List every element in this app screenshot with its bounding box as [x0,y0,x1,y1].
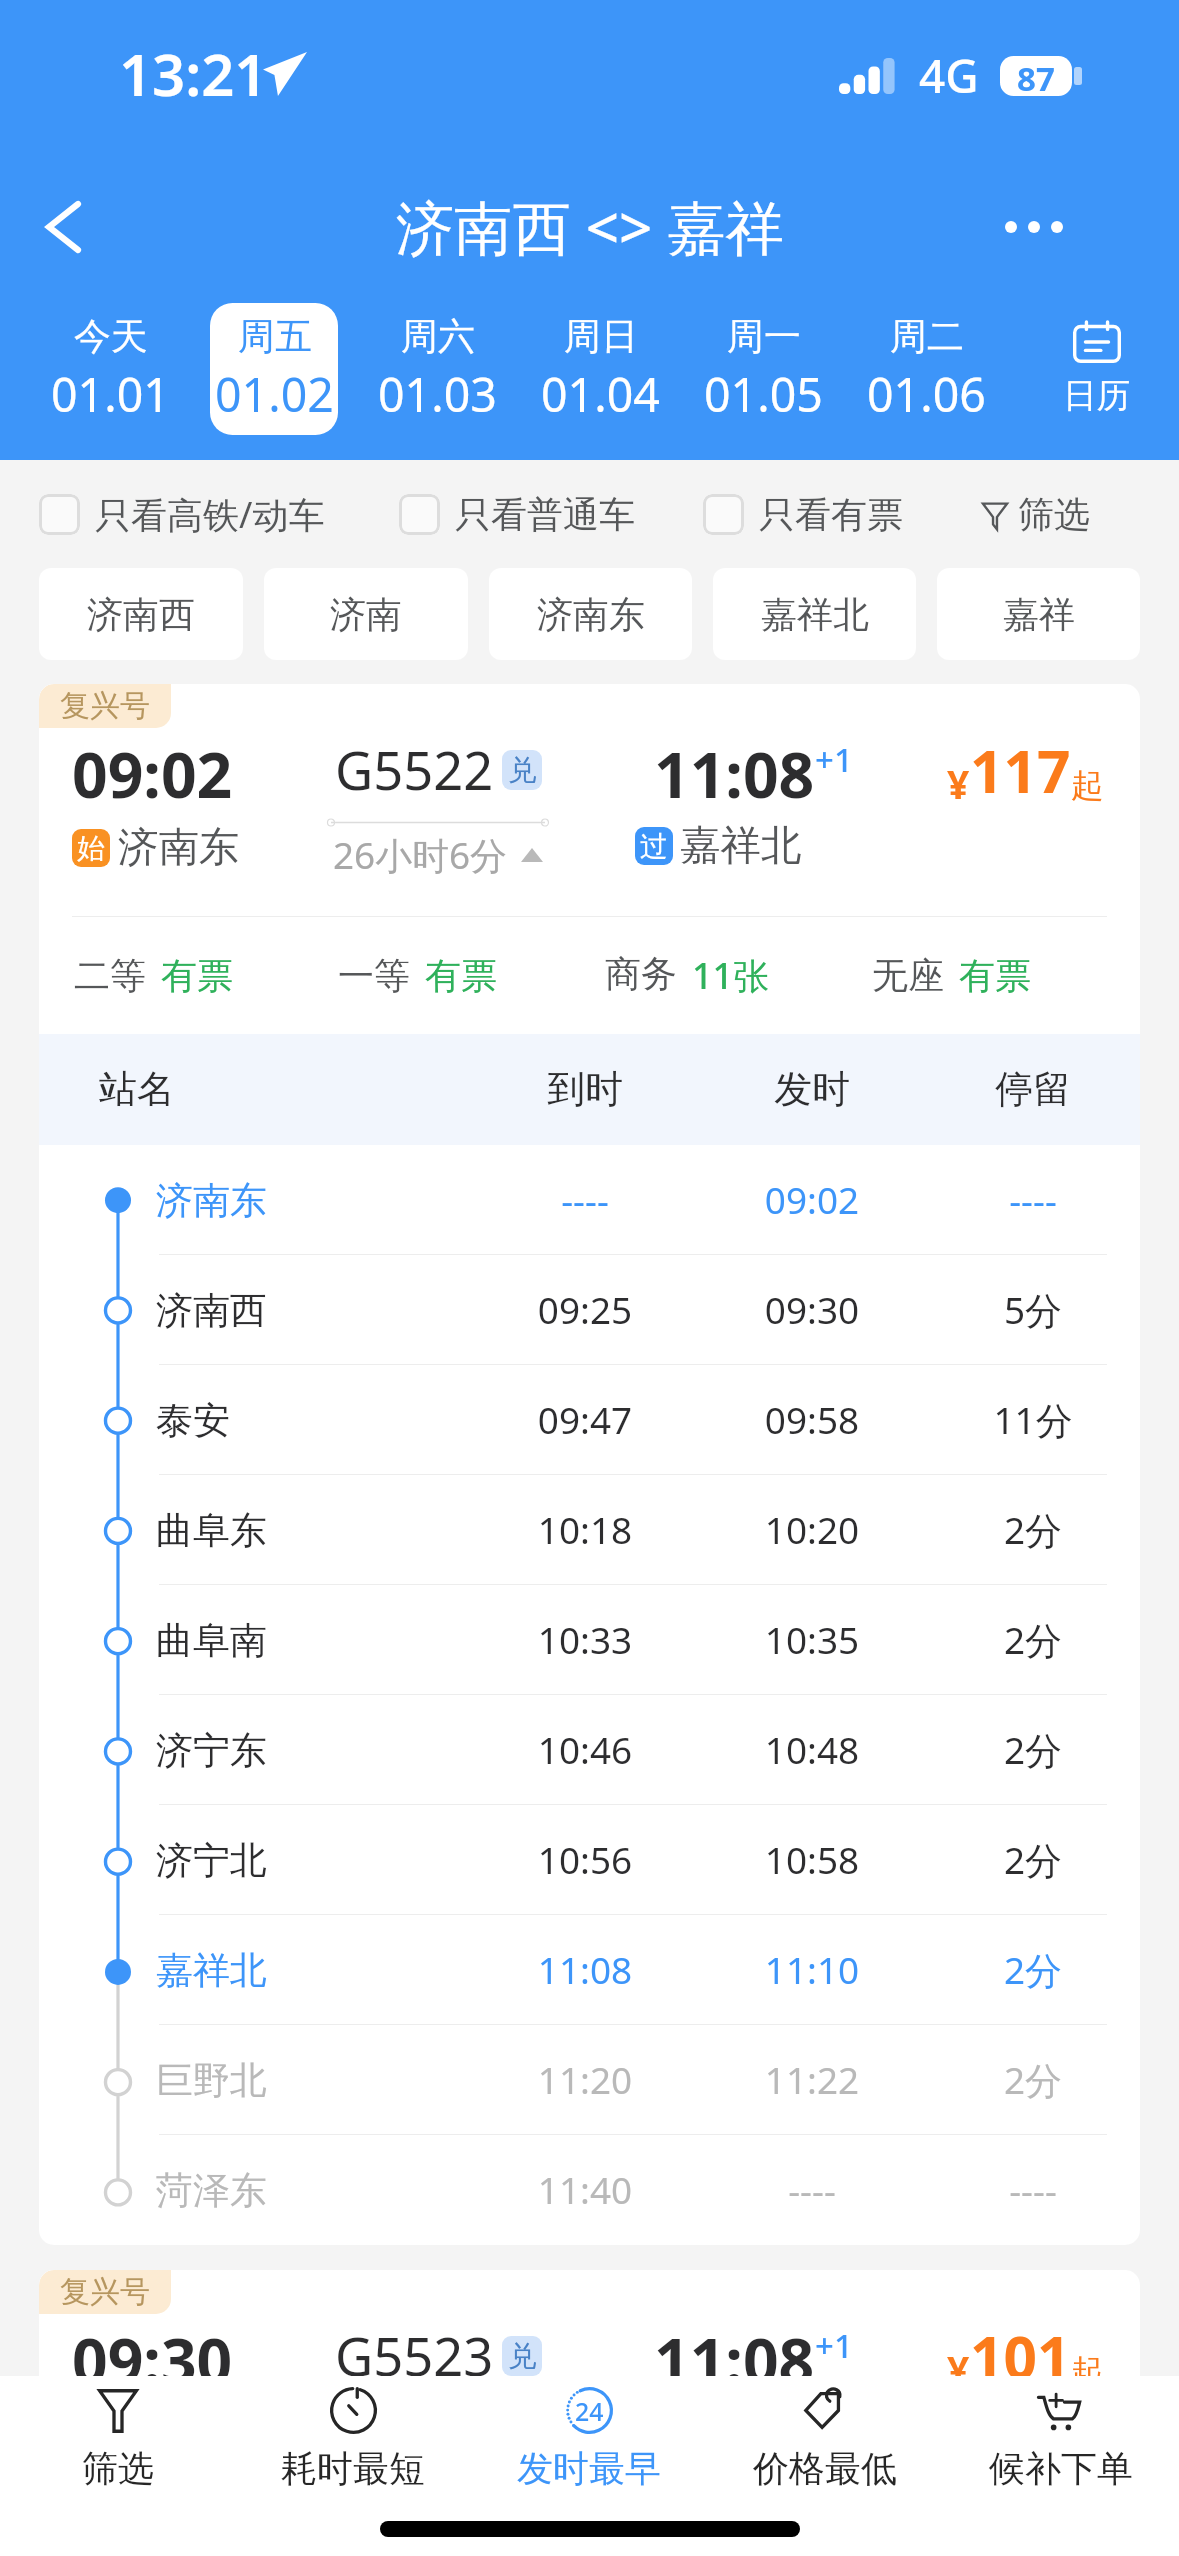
staticText: 11:22 [722,2055,902,2105]
button[interactable]: 嘉祥北 [713,568,916,660]
staticText: G5522 [335,734,494,806]
staticText: 01.01 [51,362,170,425]
staticText: 发时 [722,1066,902,1114]
staticText: 5分 [943,1285,1123,1335]
staticText: 济南东 [118,822,240,873]
staticText: 耗时最短 [281,2446,425,2491]
button[interactable]: 耗时最短 [235,2376,471,2502]
staticText: ¥ [947,757,970,810]
staticText: 周六 [401,313,475,359]
staticText: 一等 [338,953,410,998]
staticText: 巨野北 [156,2057,267,2103]
staticText: 嘉祥北 [680,820,802,871]
staticText: 筛选 [82,2446,154,2491]
button[interactable]: 周六 [374,303,501,435]
button[interactable]: 今天 [46,303,174,435]
staticText: 日历 [1063,375,1131,417]
staticText: 2分 [943,1835,1123,1885]
staticText: 周日 [564,313,638,359]
staticText: 11:08 [654,2317,815,2402]
button[interactable]: 周一 [700,303,827,435]
button[interactable]: 只看有票 [703,492,903,537]
staticText: 商务 [605,951,677,996]
button[interactable]: 候补下单 [943,2376,1179,2502]
staticText: 10:56 [495,1835,675,1885]
button[interactable]: More options [980,173,1088,281]
staticText: 11:10 [722,1945,902,1995]
button[interactable]: 复兴号 [39,684,1140,2245]
staticText: 候补下单 [989,2446,1133,2491]
staticText: 有票 [161,953,233,998]
staticText: 嘉祥 [1003,592,1075,637]
staticText: 有票 [425,953,497,998]
staticText: 济南西 <> 嘉祥 [396,187,784,266]
staticText: ¥ [947,2343,970,2396]
staticText: 09:25 [495,1285,675,1335]
button[interactable]: 筛选 [981,492,1090,537]
staticText: 无座 [872,953,944,998]
staticText: 发时最早 [517,2446,661,2491]
staticText: G5523 [335,2320,494,2392]
staticText: 兑 [508,752,537,788]
staticText: 11分 [943,1395,1123,1445]
staticText: 11:20 [495,2055,675,2105]
staticText: 曲阜南 [156,1617,267,1663]
staticText: 24 [575,2394,604,2428]
staticText: ---- [495,1175,675,1225]
button[interactable]: 筛选 [0,2376,235,2502]
staticText: 周一 [727,313,801,359]
staticText: 26小时6分 [333,2416,507,2466]
staticText: 10:35 [722,1615,902,1665]
staticText: +1 [815,2323,853,2368]
staticText: 09:02 [722,1175,902,1225]
staticText: 11:08 [654,731,815,816]
staticText: 10:33 [495,1615,675,1665]
staticText: 87 [1017,56,1055,96]
staticText: 01.04 [541,362,660,425]
staticText: 只看高铁/动车 [95,490,325,539]
button[interactable]: Back [9,173,117,281]
button[interactable]: 周日 [537,303,664,435]
staticText: 济南东 [156,1177,267,1223]
button[interactable]: Calendar [1008,303,1179,459]
staticText: 11:08 [495,1945,675,1995]
staticText: 济南 [330,592,402,637]
staticText: 嘉祥北 [680,2406,802,2457]
staticText: ---- [943,2165,1123,2215]
staticText: 停留 [943,1066,1123,1114]
staticText: 价格最低 [753,2446,897,2491]
staticText: 过 [640,829,668,864]
staticText: 筛选 [1018,492,1090,537]
staticText: 周二 [890,313,964,359]
button[interactable]: 周二 [863,303,990,435]
staticText: 到时 [495,1066,675,1114]
button[interactable]: 只看高铁/动车 [39,490,325,539]
staticText: 01.06 [867,362,986,425]
button[interactable]: 周五 [210,303,338,435]
staticText: 二等 [74,953,146,998]
button[interactable]: 复兴号 [39,2270,1140,2556]
staticText: 周五 [238,313,312,359]
button[interactable]: 济南 [264,568,468,660]
staticText: 2分 [943,1945,1123,1995]
button[interactable]: 嘉祥 [937,568,1140,660]
staticText: 10:20 [722,1505,902,1555]
staticText: 济南西 [156,1287,267,1333]
staticText: 济南东 [118,2408,240,2459]
staticText: ---- [722,2165,902,2215]
button[interactable]: 价格最低 [707,2376,943,2502]
staticText: 13:21 [119,34,268,113]
staticText: 济南东 [537,592,645,637]
staticText: +1 [815,737,853,782]
button[interactable]: 24 [471,2376,707,2502]
button[interactable]: 济南东 [489,568,692,660]
staticText: 兑 [508,2338,537,2374]
button[interactable]: 只看普通车 [399,492,635,537]
staticText: 01.03 [378,362,497,425]
button[interactable]: 济南西 [39,568,243,660]
staticText: ---- [943,1175,1123,1225]
staticText: 09:30 [722,1285,902,1335]
staticText: 09:47 [495,1395,675,1445]
